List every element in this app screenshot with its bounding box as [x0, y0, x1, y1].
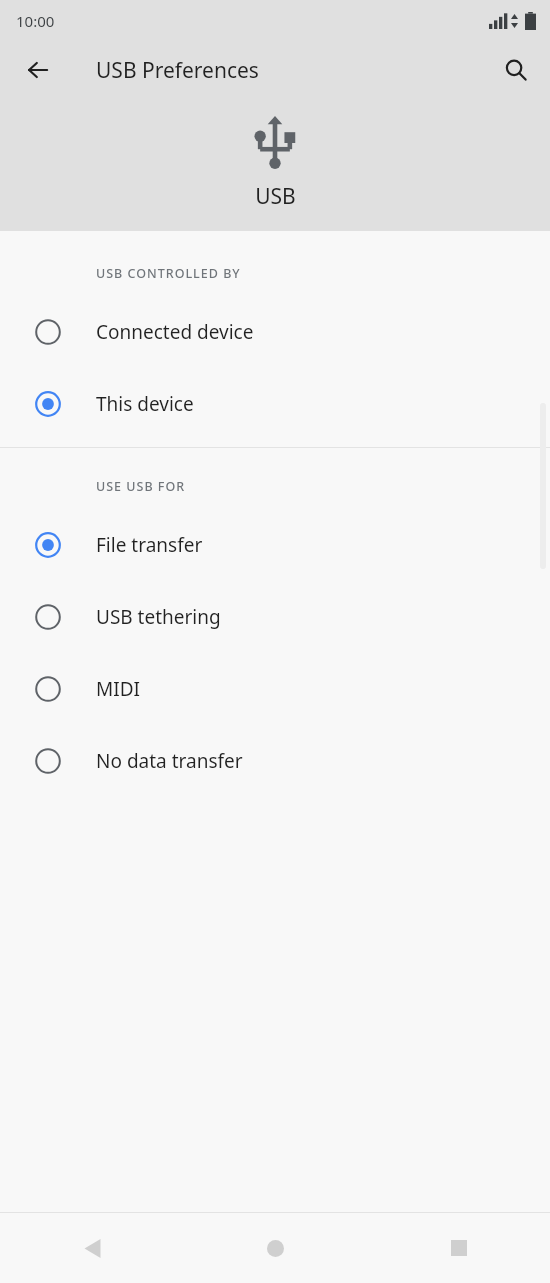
staticText: MIDI [96, 676, 140, 702]
staticText: USB Preferences [96, 56, 259, 85]
staticText: USB CONTROLLED BY [96, 265, 241, 282]
button[interactable]: Recent apps [367, 1213, 550, 1283]
button[interactable]: File transfer [0, 509, 550, 581]
button[interactable]: No data transfer [0, 725, 550, 797]
staticText: USB tethering [96, 604, 221, 630]
button[interactable]: Back [14, 46, 62, 94]
staticText: No data transfer [96, 748, 243, 774]
staticText: This device [96, 391, 194, 417]
staticText: USB [255, 182, 296, 211]
staticText: Connected device [96, 319, 254, 345]
button[interactable]: Search [492, 46, 540, 94]
button[interactable]: MIDI [0, 653, 550, 725]
button[interactable]: This device [0, 368, 550, 440]
button[interactable]: USB tethering [0, 581, 550, 653]
button[interactable]: Home [184, 1213, 367, 1283]
staticText: File transfer [96, 532, 203, 558]
staticText: USE USB FOR [96, 478, 186, 495]
staticText: 10:00 [16, 11, 55, 31]
button[interactable]: Back [0, 1213, 184, 1283]
button[interactable]: Connected device [0, 296, 550, 368]
